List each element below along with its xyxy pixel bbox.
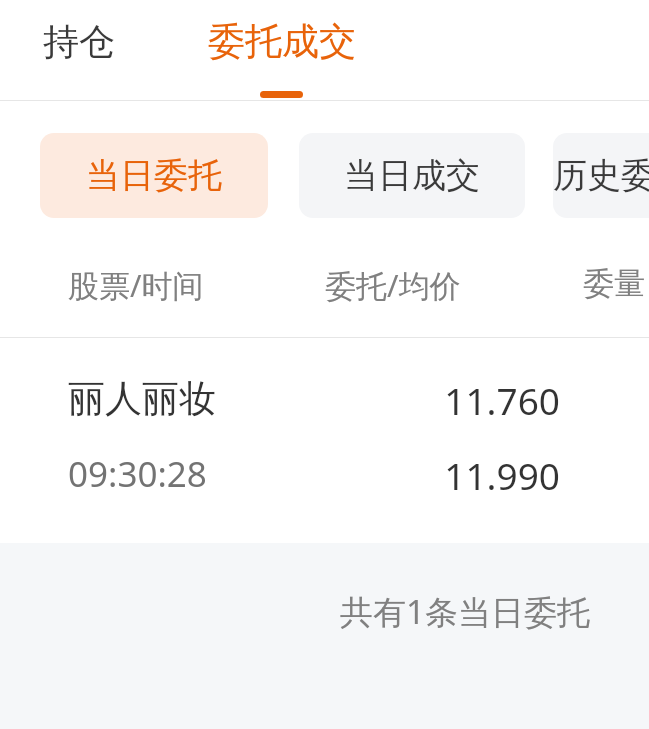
staticText: 11.760	[0, 375, 560, 425]
staticText: 当日委托	[86, 154, 222, 197]
staticText: 09:30:28	[68, 450, 207, 498]
staticText: 11.990	[0, 450, 560, 500]
staticText: 历史委托	[553, 154, 649, 197]
staticText: 委托成交	[208, 18, 356, 65]
staticText: 持仓	[43, 19, 115, 64]
staticText: 共有1条当日委托	[340, 589, 590, 634]
button[interactable]: 委托成交	[160, 0, 403, 100]
button[interactable]: 当日委托	[40, 133, 268, 218]
staticText: 股票/时间	[68, 264, 204, 306]
staticText: 委量	[583, 264, 645, 303]
button[interactable]: 持仓	[16, 0, 142, 100]
button[interactable]: 丽人丽妆	[0, 338, 649, 543]
button[interactable]: 当日成交	[299, 133, 525, 218]
staticText: 当日成交	[344, 154, 480, 197]
staticText: 委托/均价	[325, 264, 461, 306]
button[interactable]: 历史委托	[553, 133, 649, 218]
staticText: 丽人丽妆	[68, 375, 216, 422]
